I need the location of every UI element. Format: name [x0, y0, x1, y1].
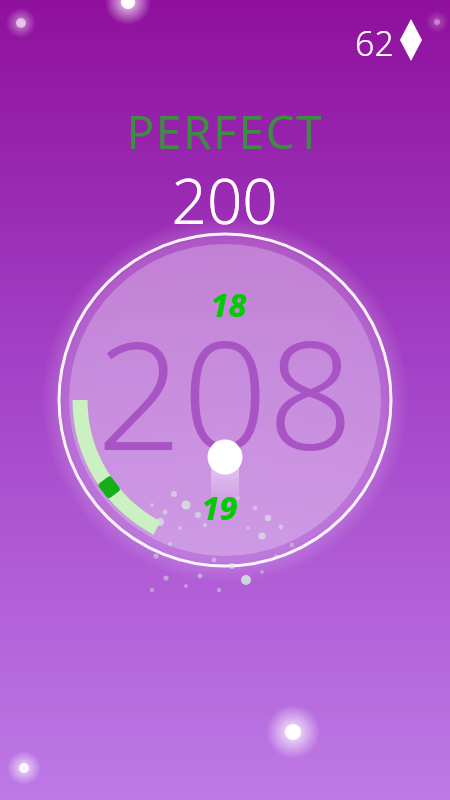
button[interactable]: Game field, tap to move the paddle [0, 0, 450, 800]
